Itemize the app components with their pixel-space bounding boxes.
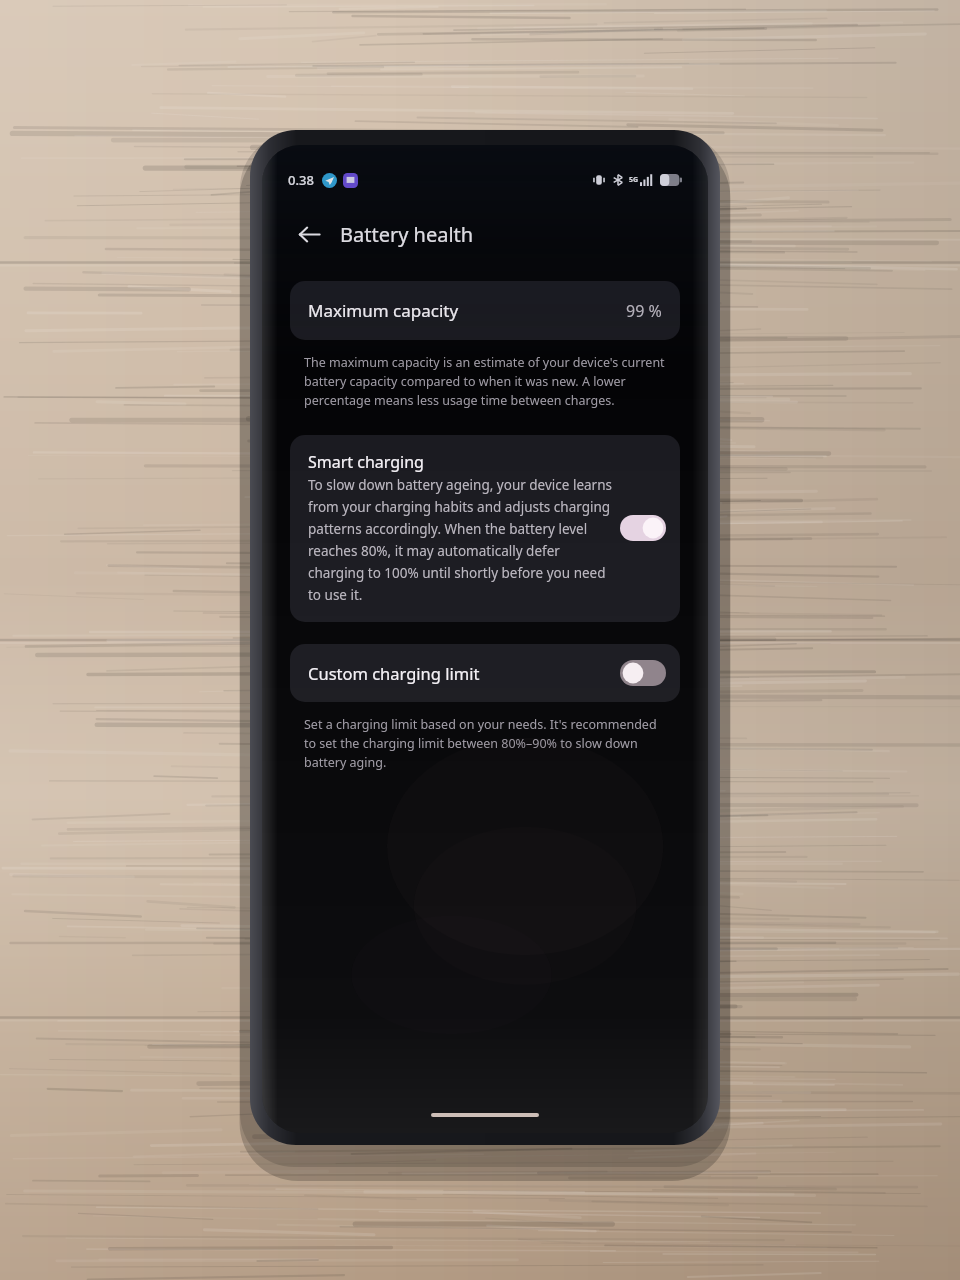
button[interactable]: Toggle off [620, 660, 666, 686]
staticText: Battery health [340, 221, 474, 248]
button[interactable]: Smart charging [290, 435, 680, 622]
staticText: Maximum capacity [308, 299, 459, 322]
staticText: To slow down battery ageing, your device… [308, 476, 612, 604]
button[interactable]: Maximum capacity [290, 281, 680, 340]
button[interactable]: Toggle on [620, 515, 666, 541]
button[interactable]: Custom charging limit [290, 644, 680, 702]
staticText: Smart charging [308, 451, 424, 473]
button[interactable]: Back [288, 213, 330, 255]
staticText: Custom charging limit [308, 662, 480, 684]
staticText: The maximum capacity is an estimate of y… [304, 354, 666, 409]
staticText: 99 % [626, 300, 662, 322]
staticText: Set a charging limit based on your needs… [304, 716, 666, 771]
staticText: 5G [629, 175, 639, 185]
staticText: 0.38 [288, 171, 314, 189]
